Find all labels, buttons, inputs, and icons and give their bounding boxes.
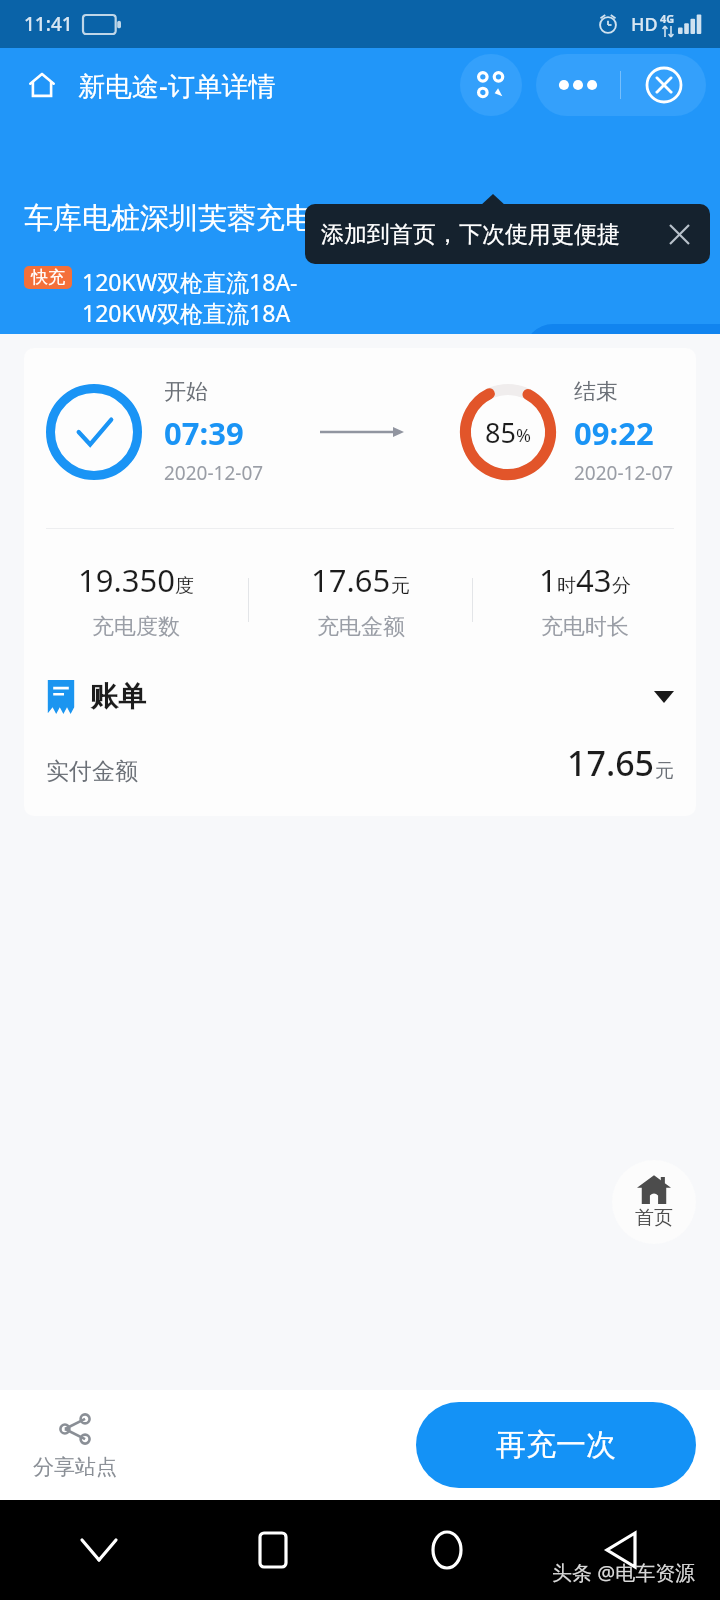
staticText: 元 [391,574,410,598]
staticText: 2020-12-07 [164,460,264,486]
staticText: 充电金额 [317,613,405,641]
staticText: 2020-12-07 [574,460,674,486]
staticText: 分 [612,574,631,598]
staticText: 头条 @电车资源 [552,1559,696,1586]
button[interactable]: Back [534,1500,708,1600]
button[interactable]: Close [621,54,706,116]
staticText: 账单 [90,679,146,714]
staticText: 85 [485,414,516,451]
staticText: 实付金额 [46,757,138,786]
staticText: 分享站点 [33,1454,117,1480]
staticText: 首页 [635,1206,673,1230]
staticText: 43 [576,559,612,601]
button[interactable]: Home [22,65,62,105]
button[interactable]: 再充一次 [416,1402,696,1488]
button[interactable]: 反馈 [524,324,720,382]
staticText: 120KW双枪直流18A- 120KW双枪直流18A [82,266,298,329]
button[interactable]: 分享站点 [0,1390,150,1500]
staticText: 再充一次 [496,1426,616,1464]
staticText: 17.65 [567,740,655,786]
button[interactable]: 账单 [24,675,696,718]
staticText: 充电度数 [92,613,180,641]
staticText: 11:41 [24,11,73,37]
staticText: 09:22 [574,412,654,454]
button[interactable]: Scan [460,54,522,116]
button[interactable]: Recent apps [186,1500,360,1600]
staticText: 07:39 [164,412,244,454]
button[interactable]: Home [360,1500,534,1600]
staticText: 元 [655,759,674,783]
staticText: 充电时长 [541,613,629,641]
staticText: 结束 [574,378,618,406]
staticText: 快充 [31,267,65,288]
staticText: 度 [175,574,194,598]
staticText: HD [631,12,658,37]
staticText: 添加到首页，下次使用更便捷 [321,220,620,249]
staticText: 车库电桩深圳芙蓉充电站 [24,200,343,237]
button[interactable]: 首页 [612,1160,696,1244]
staticText: 17.65 [311,559,391,601]
staticText: 1 [539,559,557,601]
button[interactable]: Hide keyboard [12,1500,186,1600]
staticText: 开始 [164,378,208,406]
staticText: 4G [660,11,675,26]
button[interactable]: Dismiss tip [664,219,694,249]
staticText: 19.350 [78,559,175,601]
staticText: % [516,423,531,448]
staticText: 新电途-订单详情 [78,67,276,104]
staticText: 时 [557,574,576,598]
button[interactable]: More options [536,54,620,116]
